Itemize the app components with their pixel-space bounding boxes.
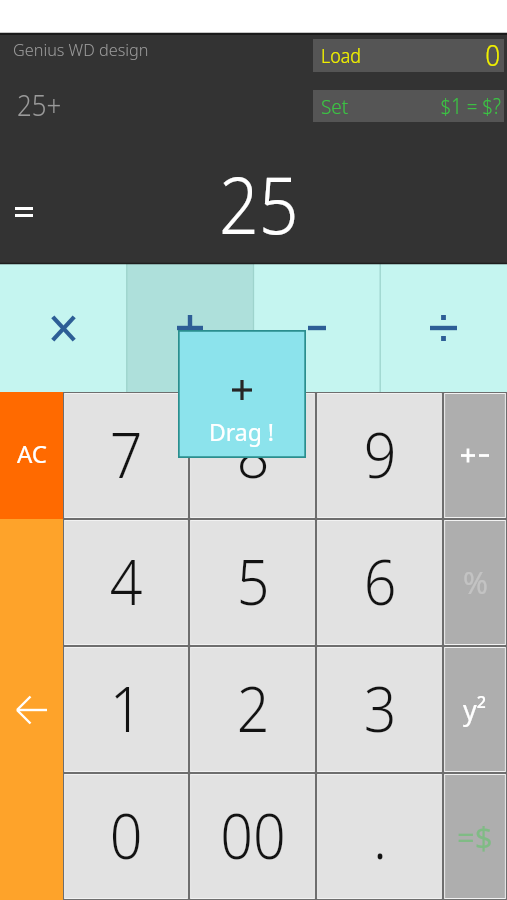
button[interactable]: Load xyxy=(313,39,504,72)
button[interactable]: =$ xyxy=(443,773,507,900)
button[interactable]: 9 xyxy=(316,392,443,519)
button[interactable]: Multiply xyxy=(0,264,126,392)
button[interactable]: Divide xyxy=(380,264,507,392)
staticText: 0 xyxy=(110,792,142,878)
staticText: 00 xyxy=(220,792,286,878)
button[interactable]: Minus xyxy=(253,264,380,392)
staticText: 5 xyxy=(237,538,269,624)
button[interactable]: Drag ! xyxy=(178,330,306,458)
button[interactable]: 2 xyxy=(189,646,316,773)
staticText: 6 xyxy=(364,538,396,624)
staticText: Load xyxy=(321,42,361,69)
button[interactable]: Backspace xyxy=(0,519,63,900)
staticText: y² xyxy=(463,691,487,728)
button[interactable]: Plus xyxy=(126,264,253,392)
staticText: AC xyxy=(17,437,48,470)
staticText: % xyxy=(463,562,488,603)
button[interactable]: Set xyxy=(313,90,504,122)
button[interactable]: AC xyxy=(0,392,63,519)
other: Equals xyxy=(15,207,33,217)
staticText: 1 xyxy=(110,665,142,751)
staticText: 25+ xyxy=(17,85,61,124)
button[interactable]: . xyxy=(316,773,443,900)
button[interactable]: 0 xyxy=(63,773,189,900)
button[interactable]: 1 xyxy=(63,646,189,773)
button[interactable]: 5 xyxy=(189,519,316,646)
staticText: 25 xyxy=(219,148,299,257)
button[interactable]: 4 xyxy=(63,519,189,646)
staticText: 9 xyxy=(364,411,396,497)
button[interactable]: 3 xyxy=(316,646,443,773)
button[interactable]: y² xyxy=(443,646,507,773)
staticText: 7 xyxy=(110,411,142,497)
staticText: $1 = $? xyxy=(440,92,501,121)
staticText: Set xyxy=(321,93,348,120)
staticText: 4 xyxy=(110,538,142,624)
button[interactable] xyxy=(443,392,507,519)
staticText: =$ xyxy=(457,816,493,858)
staticText: Drag ! xyxy=(209,416,275,447)
staticText: 0 xyxy=(485,34,501,67)
staticText: Genius WD design xyxy=(13,38,149,61)
button[interactable]: 6 xyxy=(316,519,443,646)
staticText: 3 xyxy=(364,665,396,751)
staticText: . xyxy=(373,792,387,878)
button[interactable]: 8 xyxy=(189,392,316,519)
staticText: 8 xyxy=(237,411,269,497)
button[interactable]: % xyxy=(443,519,507,646)
button[interactable]: 7 xyxy=(63,392,189,519)
button[interactable]: 00 xyxy=(189,773,316,900)
staticText: 2 xyxy=(237,665,269,751)
